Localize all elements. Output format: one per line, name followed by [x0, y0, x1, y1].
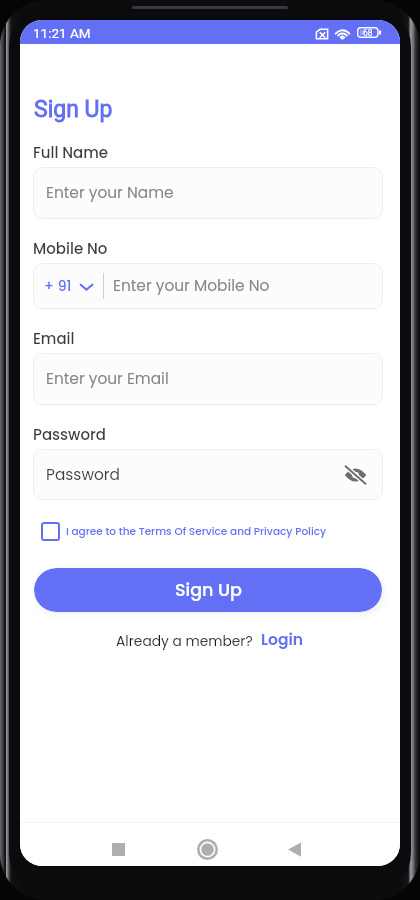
- staticText: Enter your Email: [46, 368, 370, 390]
- button[interactable]: Home: [195, 837, 220, 862]
- staticText: Enter your Name: [46, 182, 370, 204]
- staticText: 11:21 AM: [33, 25, 91, 41]
- staticText: I agree to the Terms Of Service and Priv…: [66, 524, 327, 539]
- button[interactable]: Show password: [344, 464, 367, 486]
- staticText: 68: [363, 28, 373, 38]
- button[interactable]: Enter your Email: [33, 353, 383, 405]
- button[interactable]: Enter your Name: [33, 167, 383, 219]
- staticText: + 91: [44, 276, 72, 296]
- button[interactable]: I agree to the Terms Of Service and Priv…: [41, 518, 327, 545]
- button[interactable]: Login: [261, 629, 304, 651]
- staticText: Sign Up: [34, 96, 113, 123]
- staticText: Mobile No: [33, 238, 108, 259]
- staticText: Email: [33, 328, 75, 349]
- button[interactable]: Recent apps: [106, 837, 131, 862]
- button[interactable]: Back: [282, 837, 307, 862]
- staticText: Full Name: [33, 142, 109, 163]
- staticText: Password: [46, 464, 347, 486]
- staticText: Enter your Mobile No: [113, 275, 369, 297]
- button[interactable]: + 91: [33, 263, 383, 309]
- button[interactable]: Sign Up: [34, 568, 382, 612]
- button[interactable]: Password: [33, 449, 383, 500]
- staticText: Password: [33, 424, 106, 445]
- staticText: Already a member?: [116, 632, 253, 651]
- staticText: Sign Up: [175, 578, 242, 603]
